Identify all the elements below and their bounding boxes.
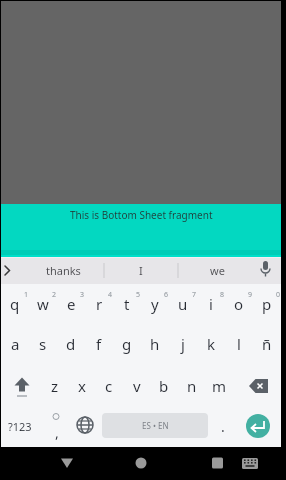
staticText: 6 xyxy=(164,290,169,300)
staticText: 7 xyxy=(192,290,197,300)
staticText: l xyxy=(237,334,241,354)
staticText: x xyxy=(78,376,86,396)
staticText: z xyxy=(51,376,59,396)
button[interactable] xyxy=(71,410,99,444)
staticText: thanks xyxy=(46,263,81,278)
button[interactable]: y xyxy=(141,286,169,322)
button[interactable]: q xyxy=(1,286,29,322)
staticText: we xyxy=(210,263,225,278)
staticText: 5 xyxy=(136,290,141,300)
button[interactable]: we xyxy=(184,258,250,283)
staticText: . xyxy=(221,417,225,436)
staticText: t xyxy=(124,294,130,314)
staticText: y xyxy=(151,294,159,314)
button[interactable]: f xyxy=(85,326,113,362)
button[interactable] xyxy=(1,369,41,405)
button[interactable]: ES • EN xyxy=(102,413,208,438)
staticText: g xyxy=(122,334,132,354)
staticText: I xyxy=(139,263,143,278)
staticText: ñ xyxy=(262,334,272,354)
button[interactable]: l xyxy=(225,326,253,362)
button[interactable]: g xyxy=(113,326,141,362)
staticText: s xyxy=(39,334,47,354)
button[interactable]: o xyxy=(225,286,253,322)
button[interactable]: t xyxy=(113,286,141,322)
button[interactable]: I xyxy=(108,258,174,283)
button[interactable]: n xyxy=(178,368,206,404)
staticText: 4 xyxy=(108,290,113,300)
button[interactable] xyxy=(202,450,232,478)
staticText: 8 xyxy=(220,290,225,300)
button[interactable] xyxy=(238,450,268,478)
button[interactable]: e xyxy=(57,286,85,322)
button[interactable]: x xyxy=(68,368,96,404)
staticText: u xyxy=(178,294,188,314)
staticText: r xyxy=(96,294,103,314)
staticText: b xyxy=(159,376,169,396)
staticText: c xyxy=(105,376,113,396)
staticText: h xyxy=(150,334,160,354)
button[interactable]: p xyxy=(253,286,281,322)
button[interactable]: k xyxy=(197,326,225,362)
button[interactable]: v xyxy=(123,368,151,404)
button[interactable]: m xyxy=(205,368,233,404)
staticText: q xyxy=(10,294,20,314)
button[interactable]: ?123 xyxy=(1,410,39,442)
staticText: o xyxy=(234,294,244,314)
button[interactable]: d xyxy=(57,326,85,362)
staticText: , xyxy=(55,423,59,442)
button[interactable] xyxy=(241,369,281,405)
staticText: j xyxy=(181,334,185,354)
button[interactable]: r xyxy=(85,286,113,322)
button[interactable]: a xyxy=(1,326,29,362)
button[interactable]: . xyxy=(212,414,234,438)
button[interactable]: z xyxy=(41,368,69,404)
button[interactable]: s xyxy=(29,326,57,362)
staticText: 1 xyxy=(24,290,29,300)
staticText: 2 xyxy=(52,290,57,300)
staticText: This is Bottom Sheet fragment xyxy=(70,208,213,222)
button[interactable]: thanks xyxy=(30,258,96,283)
staticText: f xyxy=(96,334,102,354)
staticText: ES • EN xyxy=(142,420,169,431)
button[interactable] xyxy=(246,414,270,438)
button[interactable] xyxy=(126,450,156,478)
button[interactable]: ñ xyxy=(253,326,281,362)
staticText: a xyxy=(11,334,20,354)
staticText: i xyxy=(209,294,213,314)
staticText: 0 xyxy=(276,290,281,300)
staticText: d xyxy=(66,334,76,354)
staticText: 9 xyxy=(248,290,253,300)
button[interactable] xyxy=(43,410,69,444)
button[interactable]: b xyxy=(150,368,178,404)
staticText: e xyxy=(67,294,76,314)
button[interactable]: w xyxy=(29,286,57,322)
staticText: k xyxy=(207,334,216,354)
staticText: ?123 xyxy=(8,419,32,434)
staticText: v xyxy=(133,376,141,396)
staticText: n xyxy=(187,376,197,396)
button[interactable]: c xyxy=(95,368,123,404)
button[interactable] xyxy=(1,257,19,284)
staticText: 3 xyxy=(80,290,85,300)
button[interactable]: h xyxy=(141,326,169,362)
button[interactable]: This is Bottom Sheet fragment xyxy=(1,204,281,257)
staticText: w xyxy=(37,294,49,314)
button[interactable] xyxy=(52,450,82,478)
button[interactable]: i xyxy=(197,286,225,322)
staticText: p xyxy=(262,294,272,314)
button[interactable]: u xyxy=(169,286,197,322)
button[interactable]: j xyxy=(169,326,197,362)
staticText: m xyxy=(212,376,227,396)
